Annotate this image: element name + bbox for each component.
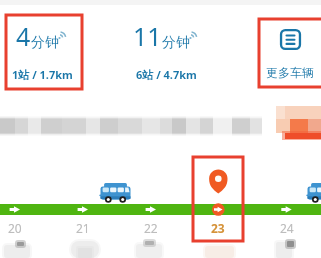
staticText: 20 (8, 220, 22, 236)
staticText: 24 (280, 220, 294, 236)
staticText: 11 (133, 19, 162, 53)
other: 更多车辆 (280, 29, 301, 50)
staticText: 23 (211, 220, 225, 236)
button[interactable]: 22 (134, 220, 168, 236)
button[interactable]: 11 (110, 14, 222, 88)
staticText: 分钟 (31, 34, 59, 52)
button[interactable]: 24 (270, 220, 304, 236)
button[interactable]: 23 (201, 220, 235, 236)
staticText: 6站 / 4.7km (136, 67, 197, 82)
staticText: 分钟 (162, 34, 190, 52)
staticText: 4 (16, 19, 31, 53)
staticText: 21 (76, 220, 90, 236)
button[interactable]: 20 (0, 220, 32, 236)
button[interactable]: 21 (66, 220, 100, 236)
staticText: 22 (144, 220, 158, 236)
staticText: 1站 / 1.7km (12, 67, 73, 82)
button[interactable]: 4 (0, 14, 98, 88)
button[interactable]: 更多车辆 (248, 14, 321, 88)
staticText: 更多车辆 (266, 65, 314, 80)
